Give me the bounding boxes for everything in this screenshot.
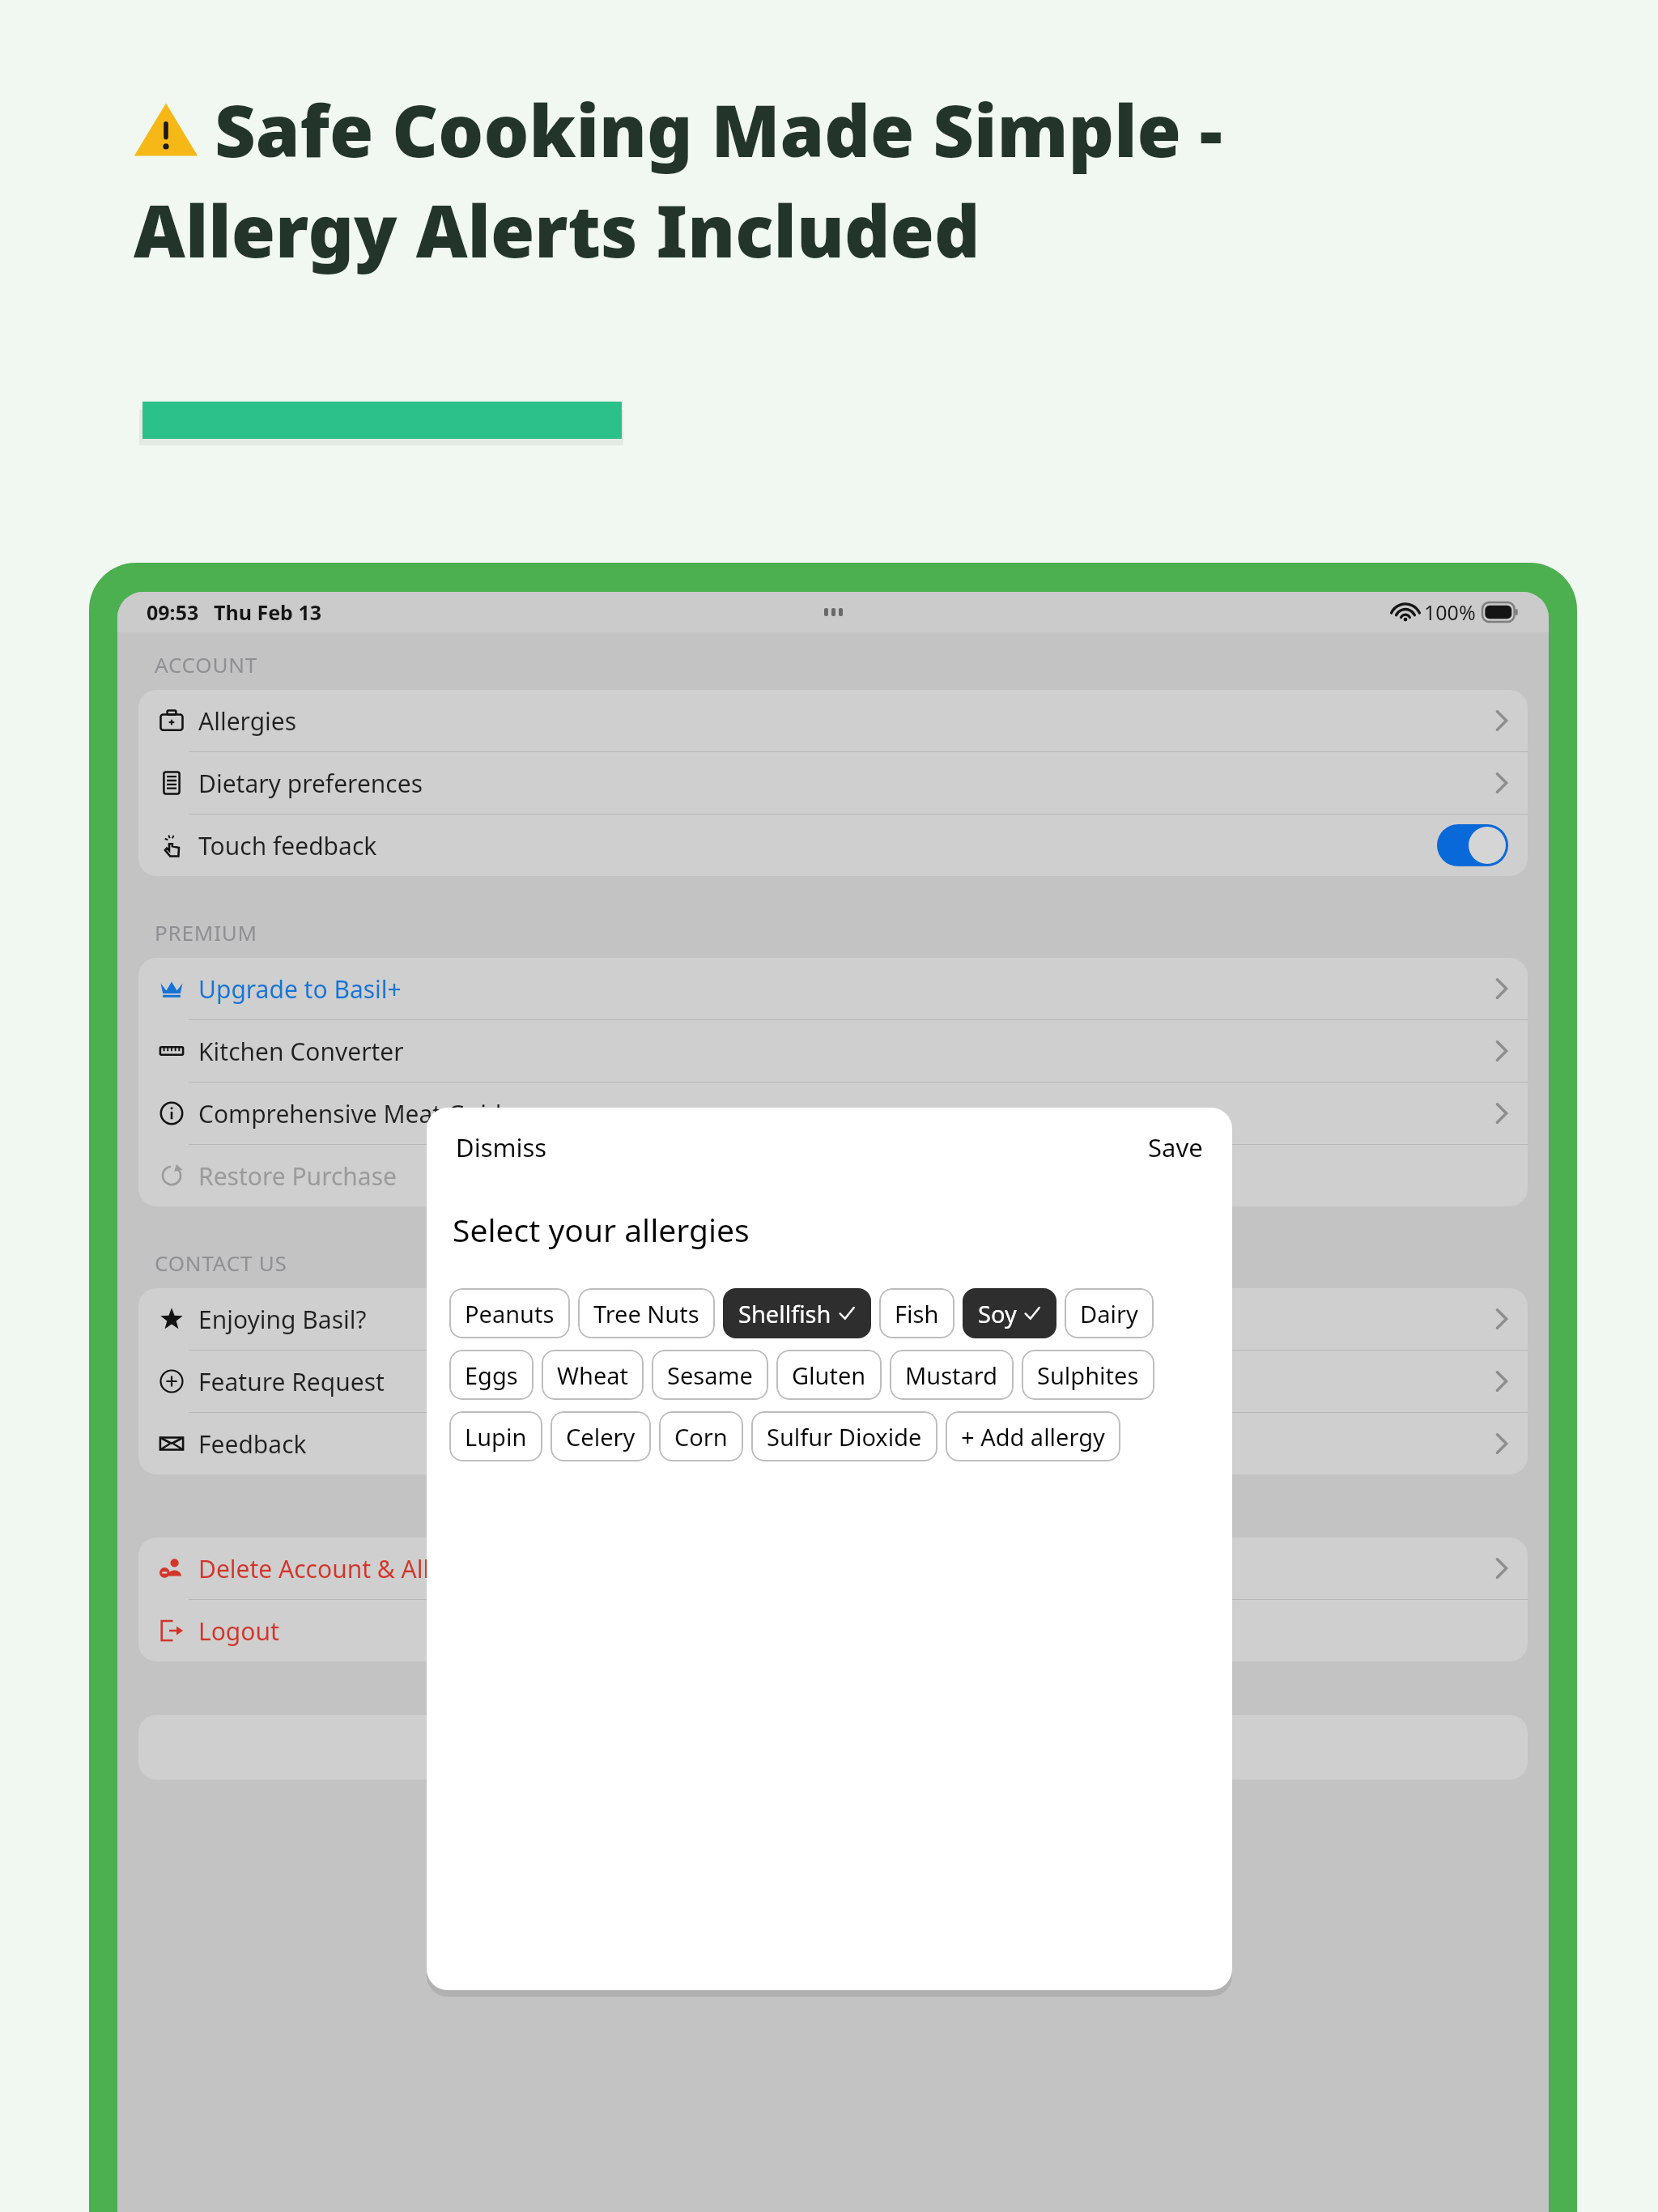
button[interactable]: Touch feedback toggle: [1437, 824, 1508, 866]
button[interactable]: Feedback: [138, 1413, 1528, 1474]
staticText: Allergy Alerts Included: [134, 181, 980, 279]
button[interactable]: Feature Request: [138, 1351, 1528, 1412]
staticText: Feedback: [198, 1427, 307, 1461]
button[interactable]: Dairy: [1065, 1288, 1154, 1338]
button[interactable]: Tree Nuts: [578, 1288, 715, 1338]
staticText: Sulfur Dioxide: [767, 1421, 922, 1453]
staticText: Dismiss: [456, 1130, 547, 1164]
button[interactable]: Corn: [659, 1411, 743, 1461]
staticText: Shellfish: [738, 1298, 831, 1329]
button[interactable]: Dismiss: [451, 1125, 552, 1169]
staticText: Logout: [198, 1614, 279, 1648]
staticText: Upgrade to Basil+: [198, 972, 402, 1006]
staticText: Dairy: [1080, 1298, 1138, 1329]
button[interactable]: Gluten: [776, 1350, 882, 1400]
staticText: Fish: [895, 1298, 939, 1329]
button[interactable]: Kitchen Converter: [138, 1020, 1528, 1082]
staticText: 09:53: [147, 598, 199, 626]
staticText: Touch feedback: [198, 829, 377, 862]
button[interactable]: Soy: [963, 1288, 1056, 1338]
staticText: Delete Account & All Data: [198, 1552, 490, 1585]
staticText: 100%: [1424, 598, 1476, 626]
staticText: Dietary preferences: [198, 767, 423, 800]
staticText: CONTACT US: [155, 1249, 287, 1277]
button[interactable]: Delete Account & All Data: [138, 1538, 1528, 1599]
button[interactable]: Sesame: [652, 1350, 768, 1400]
staticText: Restore Purchase: [198, 1159, 397, 1193]
staticText: Comprehensive Meat Guide: [198, 1097, 516, 1130]
staticText: Soy: [978, 1298, 1017, 1329]
button[interactable]: Lupin: [449, 1411, 542, 1461]
staticText: Safe Cooking Made Simple -: [215, 81, 1222, 178]
staticText: Celery: [566, 1421, 636, 1453]
staticText: Wheat: [557, 1359, 628, 1391]
staticText: Feature Request: [198, 1365, 385, 1398]
button[interactable]: + Add allergy: [946, 1411, 1120, 1461]
button[interactable]: Upgrade to Basil+: [138, 958, 1528, 1019]
staticText: Corn: [674, 1421, 728, 1453]
staticText: ACCOUNT: [155, 650, 258, 678]
staticText: Peanuts: [465, 1298, 555, 1329]
button[interactable]: Fish: [879, 1288, 954, 1338]
staticText: Sesame: [667, 1359, 753, 1391]
staticText: Kitchen Converter: [198, 1035, 404, 1068]
staticText: Gluten: [792, 1359, 866, 1391]
button[interactable]: Save: [1143, 1125, 1208, 1169]
staticText: Lupin: [465, 1421, 527, 1453]
button[interactable]: Celery: [551, 1411, 651, 1461]
button[interactable]: Enjoying Basil?: [138, 1288, 1528, 1350]
staticText: Enjoying Basil?: [198, 1303, 367, 1336]
staticText: + Add allergy: [961, 1421, 1105, 1453]
button[interactable]: Shellfish: [723, 1288, 871, 1338]
staticText: Save: [1148, 1130, 1203, 1164]
staticText: Allergies: [198, 704, 297, 738]
button[interactable]: Logout: [138, 1600, 1528, 1661]
button[interactable]: Sulfur Dioxide: [751, 1411, 937, 1461]
button[interactable]: Eggs: [449, 1350, 534, 1400]
button[interactable]: Touch feedback: [138, 815, 1528, 876]
staticText: Thu Feb 13: [214, 598, 321, 626]
staticText: Mustard: [905, 1359, 998, 1391]
button[interactable]: Mustard: [890, 1350, 1014, 1400]
staticText: Tree Nuts: [593, 1298, 699, 1329]
button[interactable]: Wheat: [542, 1350, 644, 1400]
button[interactable]: Comprehensive Meat Guide: [138, 1083, 1528, 1144]
button[interactable]: Restore Purchase: [138, 1145, 1528, 1206]
button[interactable]: Sulphites: [1022, 1350, 1154, 1400]
button[interactable]: Allergies: [138, 690, 1528, 751]
staticText: Sulphites: [1037, 1359, 1139, 1391]
staticText: Select your allergies: [453, 1208, 750, 1251]
button[interactable]: Peanuts: [449, 1288, 570, 1338]
button[interactable]: Dietary preferences: [138, 752, 1528, 814]
staticText: Eggs: [465, 1359, 518, 1391]
staticText: PREMIUM: [155, 918, 257, 946]
